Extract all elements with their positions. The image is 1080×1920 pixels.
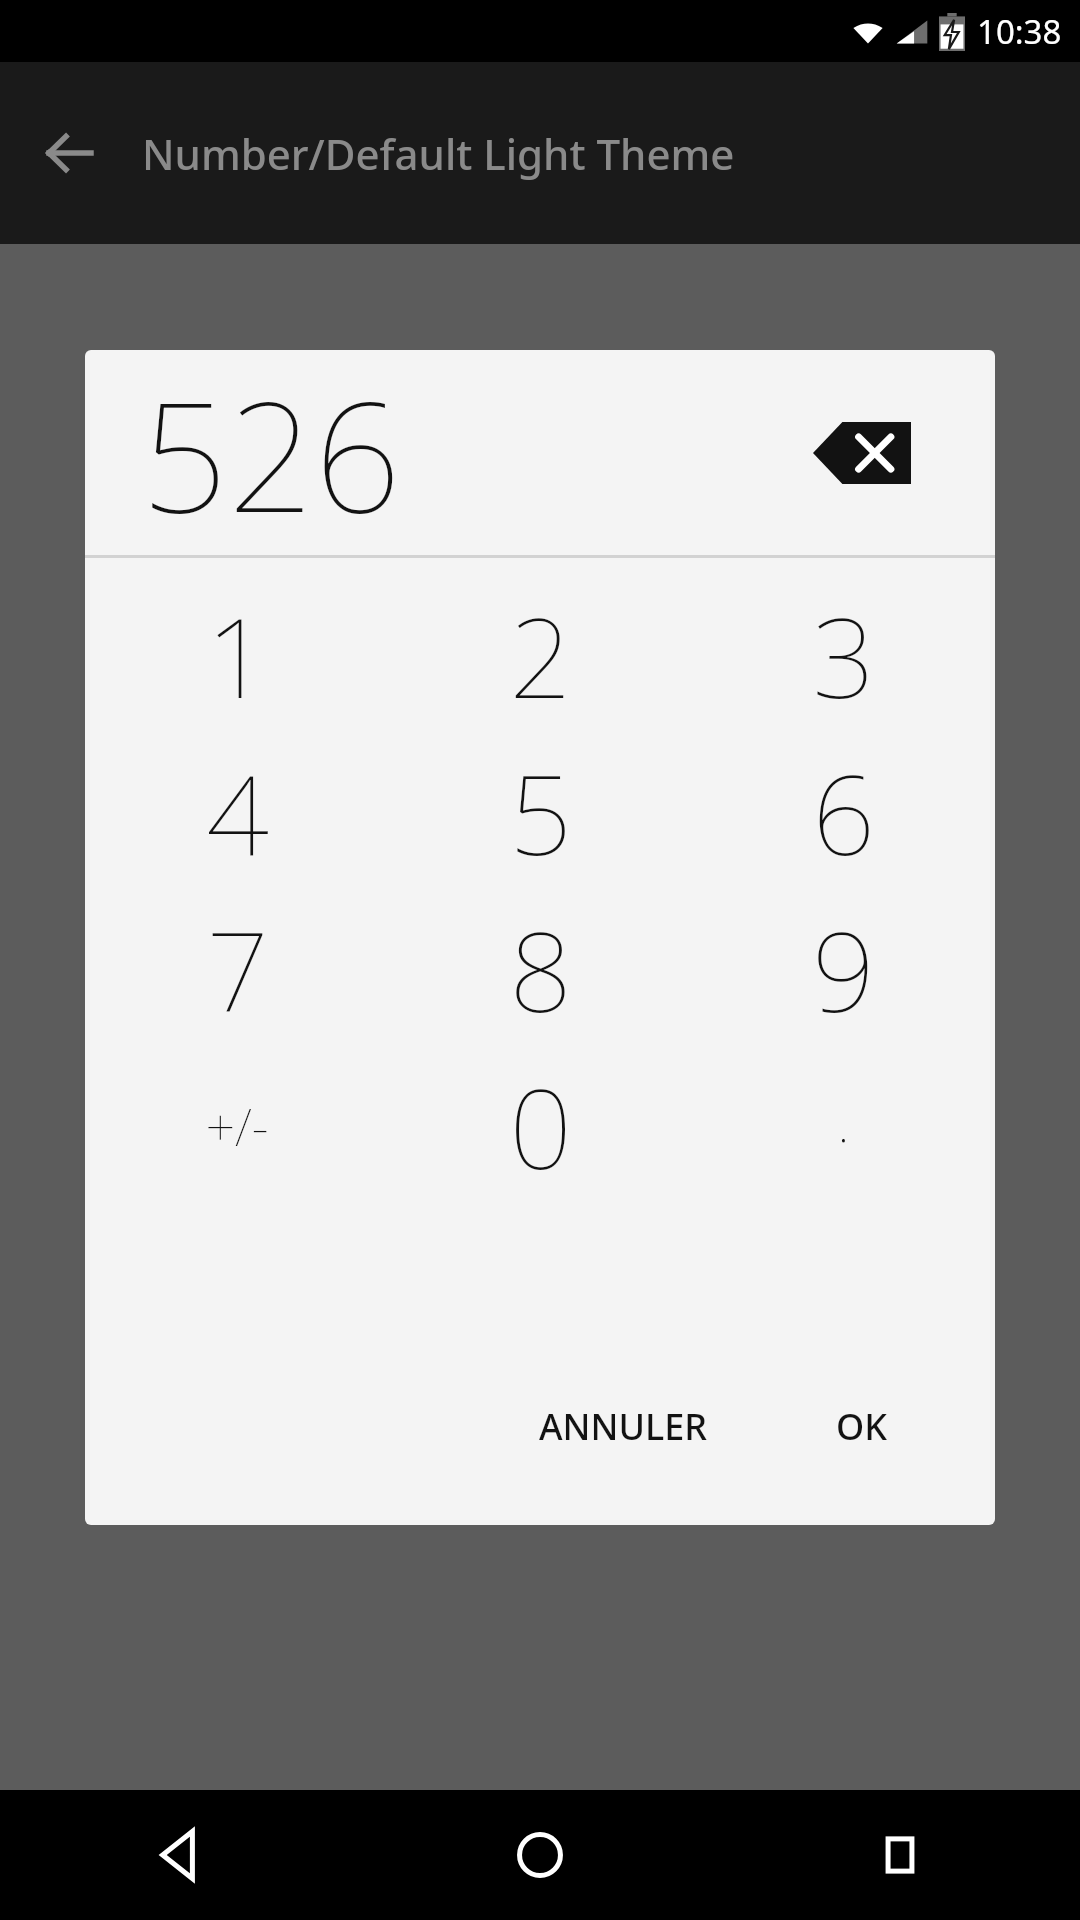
staticText: 9: [812, 894, 875, 1044]
staticText: .: [837, 1080, 850, 1159]
staticText: 6: [812, 737, 875, 887]
button[interactable]: 7: [85, 890, 389, 1047]
button[interactable]: Backspace: [807, 398, 917, 508]
staticText: 1: [206, 580, 269, 730]
button[interactable]: 0: [389, 1047, 692, 1204]
button[interactable]: 9: [692, 890, 995, 1047]
button[interactable]: ANNULER: [525, 1390, 722, 1463]
staticText: 10:38: [977, 9, 1062, 54]
staticText: 5: [509, 737, 572, 887]
staticText: 8: [509, 894, 572, 1044]
button[interactable]: 5: [389, 733, 692, 890]
button[interactable]: 4: [85, 733, 389, 890]
button[interactable]: Back: [26, 109, 114, 197]
staticText: ANNULER: [539, 1402, 708, 1451]
staticText: 3: [812, 580, 875, 730]
button[interactable]: 3: [692, 576, 995, 733]
button[interactable]: Home: [360, 1790, 720, 1920]
staticText: Number/Default Light Theme: [142, 125, 735, 182]
button[interactable]: 2: [389, 576, 692, 733]
staticText: 4: [206, 737, 269, 887]
staticText: 526: [141, 350, 401, 549]
staticText: 2: [509, 580, 572, 730]
button[interactable]: 1: [85, 576, 389, 733]
button[interactable]: Recents: [720, 1790, 1080, 1920]
button[interactable]: Back: [0, 1790, 360, 1920]
staticText: 0: [509, 1051, 572, 1201]
button[interactable]: 8: [389, 890, 692, 1047]
button[interactable]: OK: [822, 1390, 901, 1463]
staticText: OK: [836, 1402, 887, 1451]
staticText: 7: [206, 894, 269, 1044]
button[interactable]: +/-: [85, 1047, 389, 1204]
staticText: +/-: [205, 1090, 269, 1161]
button[interactable]: 6: [692, 733, 995, 890]
